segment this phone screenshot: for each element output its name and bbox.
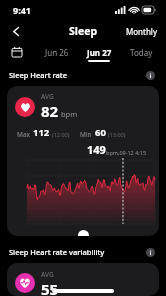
staticText: (13:00) [108,131,126,138]
staticText: 60 [95,126,106,139]
staticText: AVG [41,92,54,101]
staticText: bpm [61,109,78,119]
staticText: Min [80,130,92,139]
button[interactable]: AVG [7,86,159,236]
staticText: Monthly [126,26,158,37]
staticText: Jun 26 [45,47,69,58]
staticText: 112 [33,126,50,139]
button[interactable]: Jun 26 [35,42,78,62]
staticText: 9:41 [13,4,31,16]
button[interactable]: Back [6,21,26,41]
staticText: Max [17,130,30,139]
staticText: (12:00) [52,131,70,138]
staticText: 55 [41,279,59,296]
staticText: 149 [87,142,106,157]
button[interactable]: Info [144,69,157,82]
button[interactable]: Info [144,246,157,259]
button[interactable]: Jun 27 [78,42,120,62]
staticText: Sleep [69,24,98,38]
button[interactable]: AVG [7,263,159,296]
staticText: Sleep Heart rate [9,70,144,80]
button[interactable]: Today [120,42,162,62]
button[interactable]: Monthly [118,23,166,40]
staticText: Sleep Heart rate variability [9,247,144,257]
staticText: AVG [41,270,54,279]
staticText: 82 [41,101,59,121]
staticText: bpm,09-12 4:15 [106,149,147,156]
button[interactable]: Calendar [9,44,25,60]
staticText: Jun 27 [87,47,112,58]
staticText: Today [130,47,153,58]
button[interactable]: Scrub handle [78,230,89,236]
